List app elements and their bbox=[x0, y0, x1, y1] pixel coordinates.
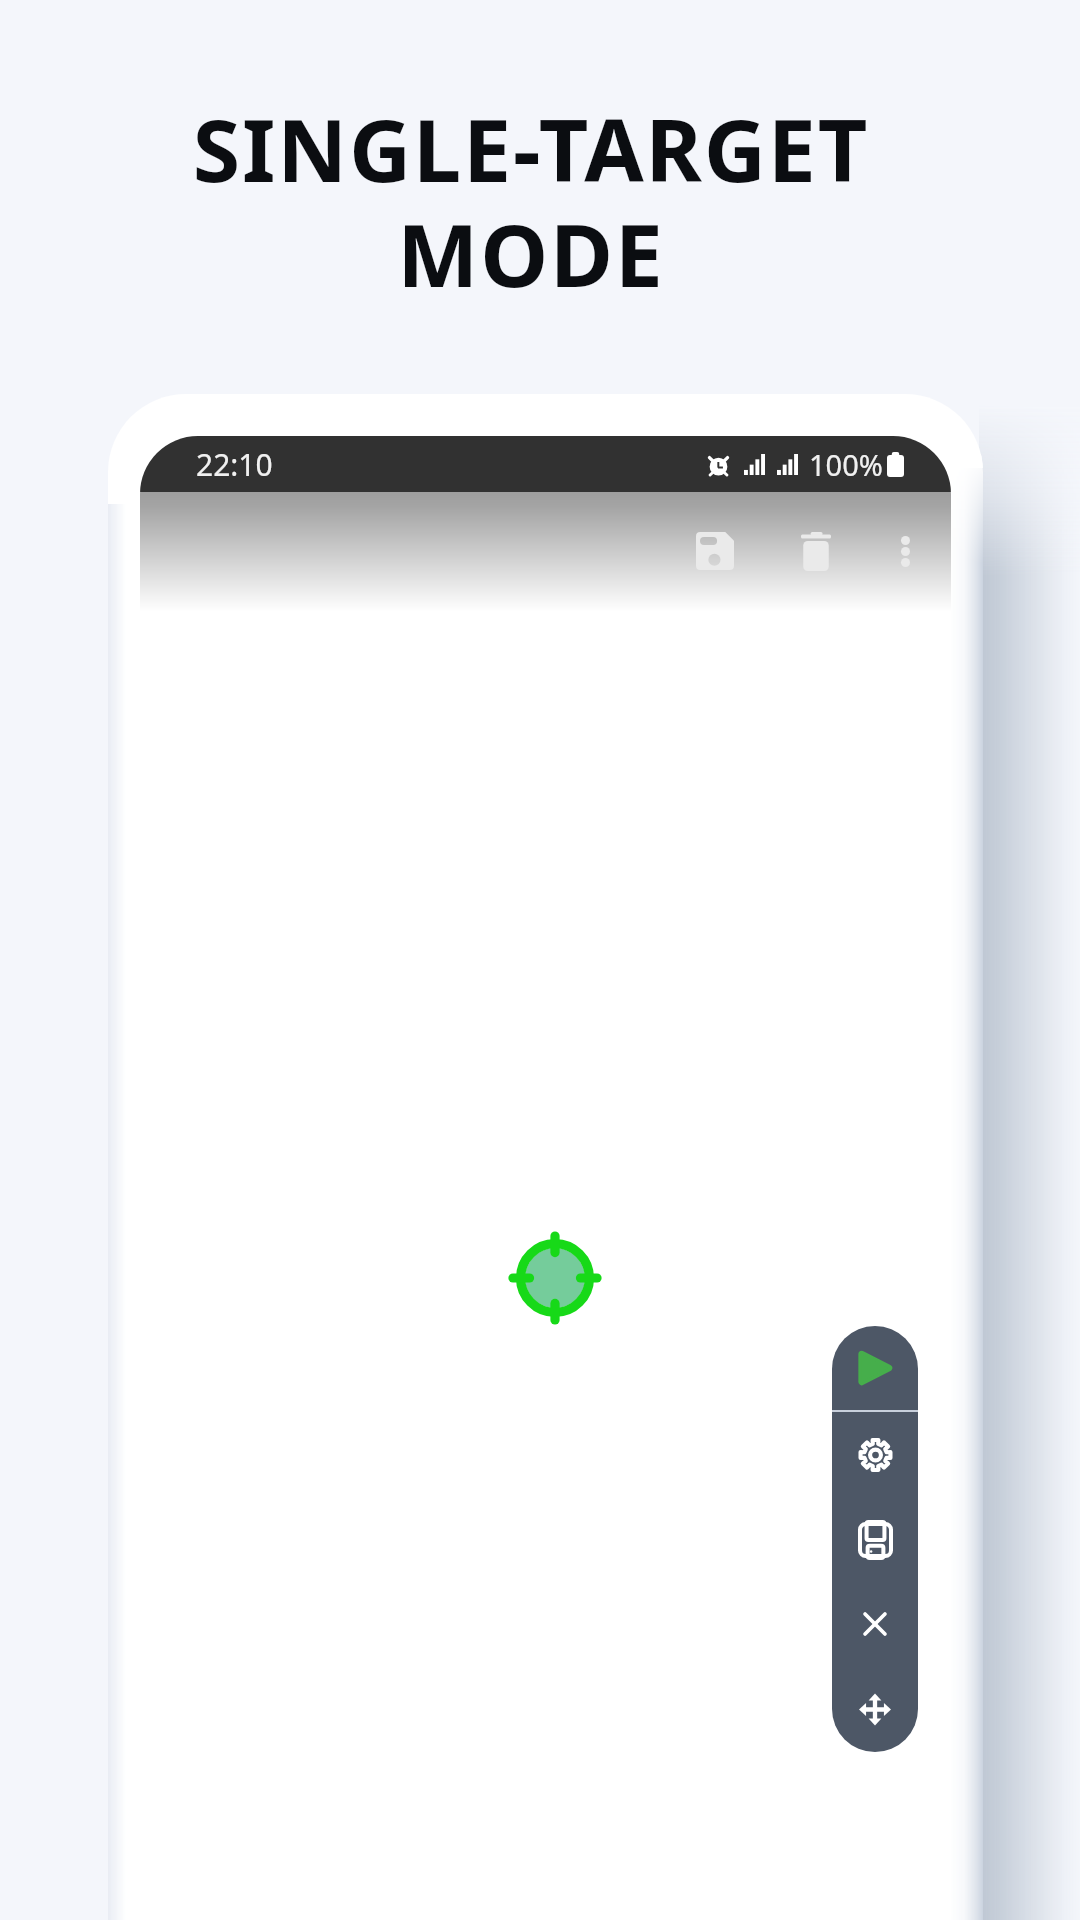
staticText: SINGLE-TARGET MODE bbox=[0, 90, 1071, 313]
staticText: 22:10 bbox=[196, 444, 273, 485]
button[interactable]: Settings bbox=[832, 1412, 918, 1498]
button[interactable]: Move bbox=[832, 1667, 918, 1752]
button[interactable]: Play bbox=[832, 1326, 918, 1409]
button[interactable]: Save bbox=[832, 1498, 918, 1581]
button[interactable]: More options bbox=[860, 507, 950, 595]
staticText: 100% bbox=[809, 445, 883, 484]
button[interactable]: Save bbox=[670, 507, 760, 595]
button[interactable]: Delete bbox=[771, 507, 861, 595]
button[interactable]: Close bbox=[832, 1582, 918, 1666]
